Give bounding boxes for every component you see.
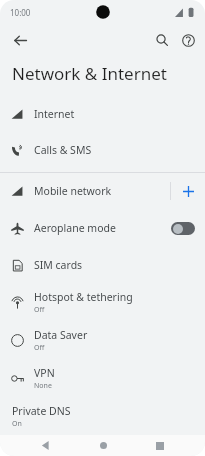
button[interactable]: Home (91, 435, 115, 456)
staticText: Aeroplane mode (34, 221, 171, 235)
staticText: Off (34, 343, 45, 353)
button[interactable]: Private DNS (0, 397, 205, 435)
button[interactable]: VPN (0, 359, 205, 397)
staticText: Off (34, 305, 45, 315)
button[interactable]: Mobile network (0, 184, 170, 198)
button[interactable]: Back (6, 26, 34, 54)
staticText: Internet (34, 107, 75, 121)
button[interactable]: Add carrier (171, 173, 205, 209)
staticText: Private DNS (12, 404, 71, 418)
staticText: Hotspot & tethering (34, 290, 133, 304)
staticText: VPN (34, 366, 55, 380)
button[interactable]: Aeroplane mode (0, 209, 205, 247)
staticText: None (34, 381, 52, 391)
staticText: Mobile network (34, 184, 112, 198)
staticText: 10:00 (10, 7, 31, 18)
staticText: On (12, 419, 22, 429)
button[interactable]: Internet (0, 96, 205, 132)
button[interactable]: Data Saver (0, 321, 205, 359)
button[interactable]: Help (175, 27, 201, 53)
staticText: Data Saver (34, 328, 88, 342)
button[interactable]: Back (33, 435, 57, 456)
button[interactable]: Search (149, 27, 175, 53)
button[interactable]: Calls & SMS (0, 132, 205, 168)
button[interactable]: Hotspot & tethering (0, 283, 205, 321)
staticText: Network & Internet (12, 62, 167, 85)
staticText: SIM cards (34, 258, 83, 272)
button[interactable]: SIM cards (0, 247, 205, 283)
button[interactable]: Recents (148, 435, 172, 456)
staticText: Calls & SMS (34, 143, 92, 157)
